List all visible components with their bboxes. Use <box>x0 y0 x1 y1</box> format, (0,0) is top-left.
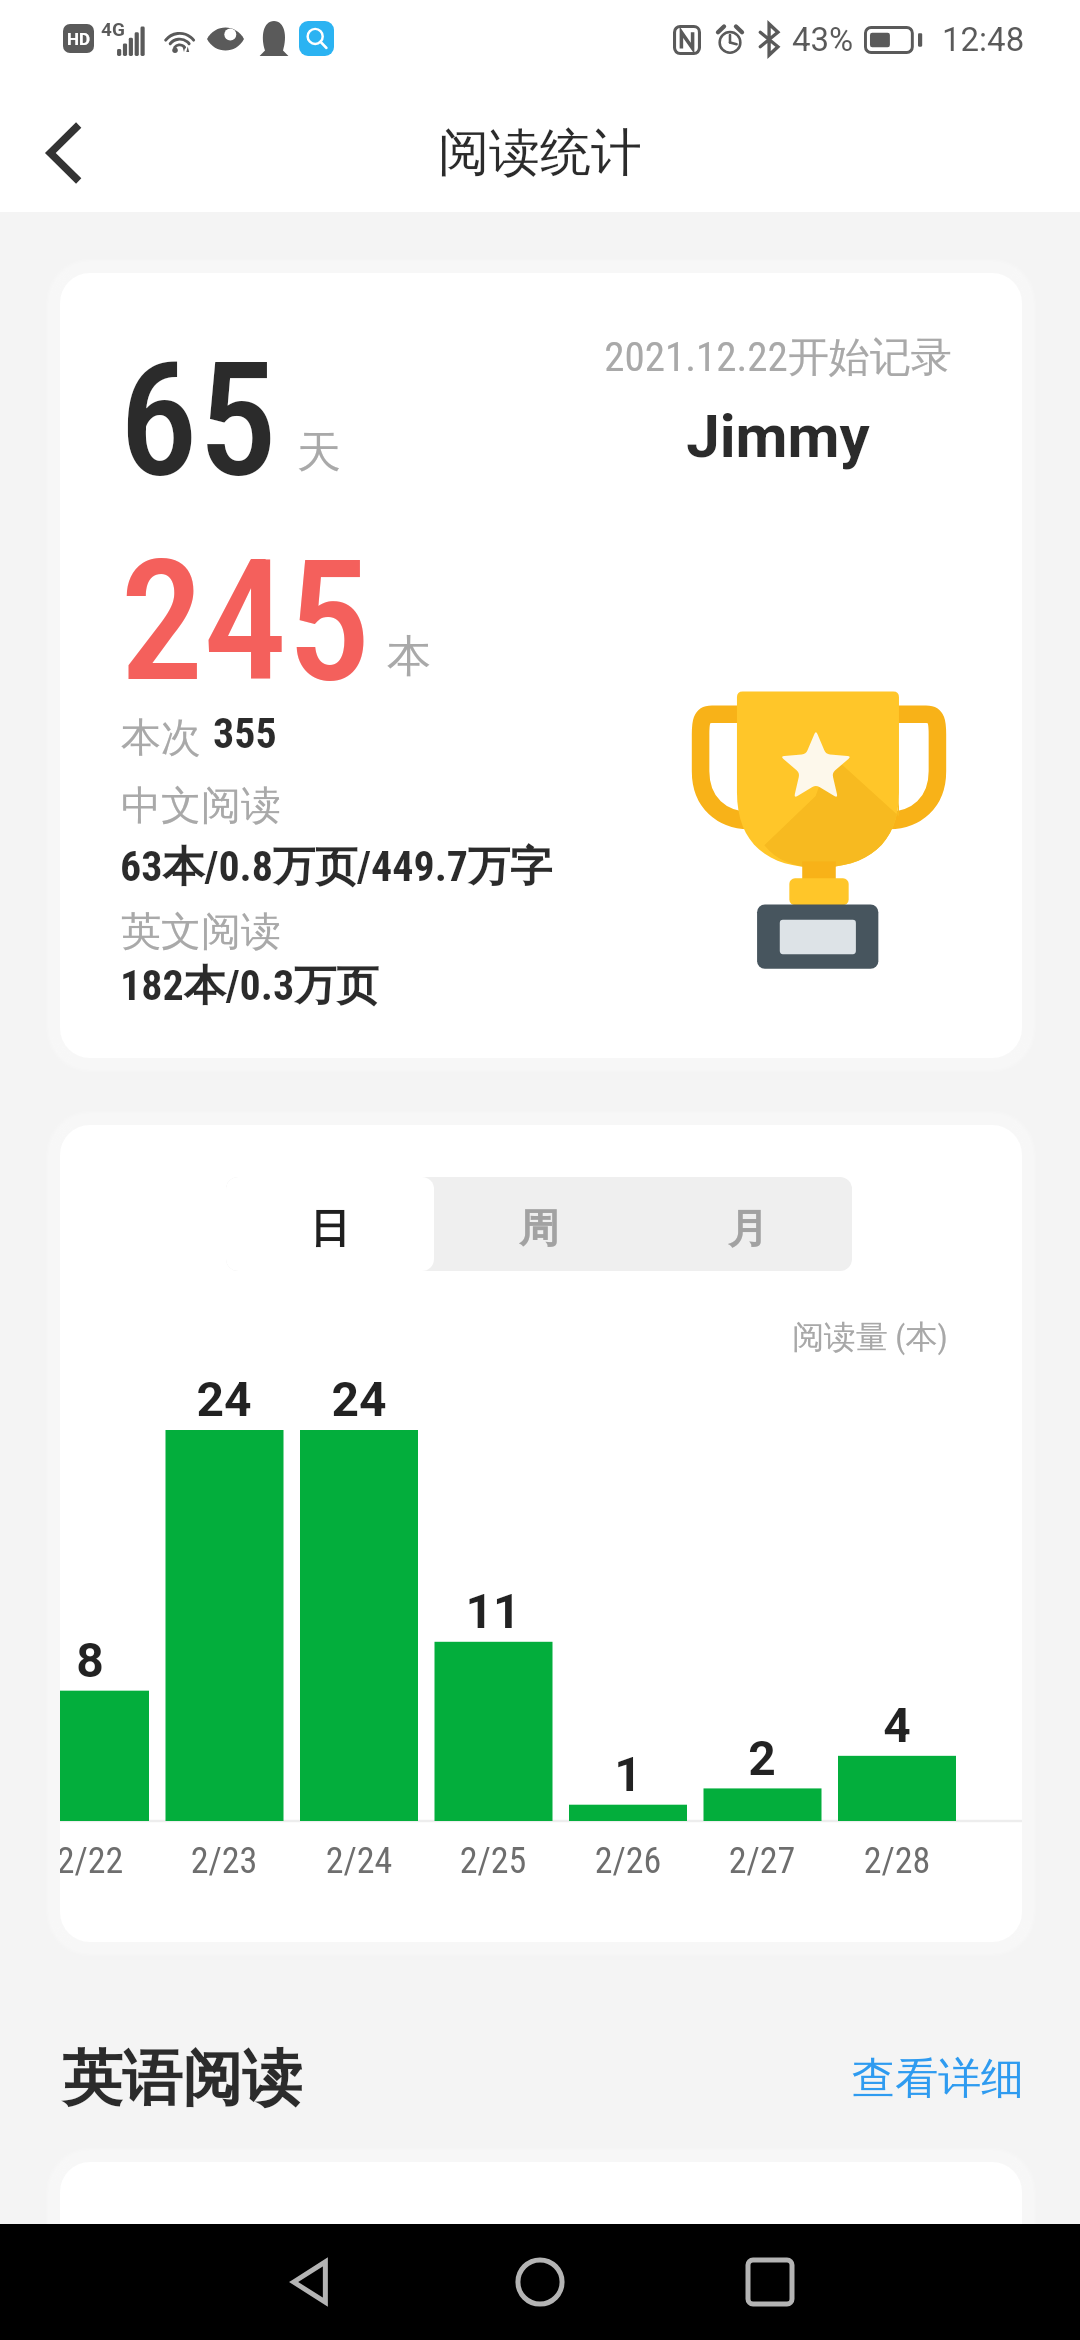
button[interactable]: Back <box>9 98 119 208</box>
staticText: 英文阅读 <box>121 906 281 956</box>
button[interactable]: 日 <box>226 1177 434 1271</box>
staticText: HD <box>67 29 91 49</box>
staticText: 本次 <box>121 712 201 762</box>
staticText: 阅读统计 <box>438 121 642 185</box>
staticText: 8 <box>60 1632 150 1688</box>
staticText: 11 <box>433 1583 553 1639</box>
staticText: 2/26 <box>558 1840 698 1882</box>
staticText: 2 <box>702 1730 822 1786</box>
staticText: 日 <box>310 1203 350 1253</box>
staticText: 2/24 <box>289 1840 429 1882</box>
staticText: Jimmy <box>568 401 988 471</box>
button[interactable]: 月 <box>643 1177 852 1271</box>
staticText: 2/23 <box>154 1840 294 1882</box>
staticText: 2/25 <box>423 1840 563 1882</box>
staticText: 周 <box>519 1203 559 1253</box>
staticText: 本 <box>387 629 431 684</box>
staticText: 2/27 <box>692 1840 832 1882</box>
staticText: 43% <box>792 20 854 59</box>
staticText: 天 <box>297 425 341 480</box>
staticText: 65 <box>119 327 277 512</box>
staticText: 245 <box>120 524 371 720</box>
staticText: 24 <box>164 1371 284 1427</box>
staticText: 阅读量 (本) <box>792 1317 948 1357</box>
button[interactable]: Home <box>492 2234 588 2330</box>
staticText: 12:48 <box>942 20 1025 59</box>
staticText: 63本/0.8万页/449.7万字 <box>120 841 553 894</box>
button[interactable]: Back <box>262 2234 358 2330</box>
staticText: 英语阅读 <box>62 2041 302 2117</box>
staticText: 182本/0.3万页 <box>120 960 379 1013</box>
staticText: 查看详细 <box>852 2052 1024 2106</box>
staticText: 1 <box>568 1746 688 1802</box>
button[interactable]: Recent apps <box>722 2234 818 2330</box>
staticText: 24 <box>299 1371 419 1427</box>
button[interactable]: 查看详细 <box>833 2034 1043 2126</box>
button[interactable]: 周 <box>434 1177 643 1271</box>
staticText: 2/28 <box>827 1840 967 1882</box>
staticText: 4G <box>101 18 125 40</box>
staticText: 2021.12.22开始记录 <box>568 332 988 384</box>
staticText: 4 <box>837 1697 957 1753</box>
staticText: 355 <box>213 709 277 758</box>
button[interactable]: 65 <box>60 273 1022 1058</box>
staticText: 中文阅读 <box>121 780 281 830</box>
staticText: 月 <box>728 1203 768 1253</box>
staticText: 2/22 <box>60 1840 160 1882</box>
